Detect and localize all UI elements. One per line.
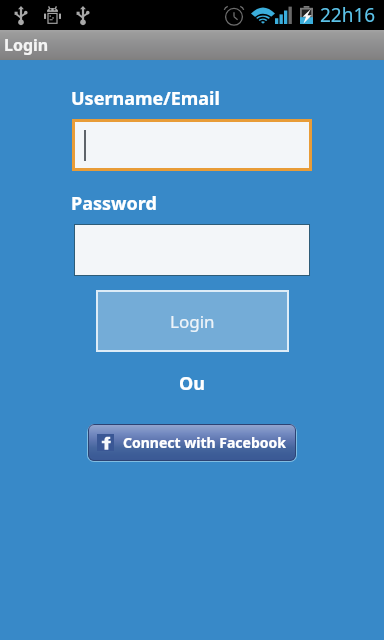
button[interactable]: Login [98,292,287,350]
staticText: Ou [0,371,384,396]
staticText: Username/Email [71,86,220,111]
staticText: Login [4,34,49,56]
staticText: 22h16 [320,2,376,28]
staticText: Login [170,310,215,333]
staticText: Password [71,191,157,216]
staticText: Connect with Facebook [123,433,286,452]
button[interactable] [75,122,309,168]
button[interactable]: Connect with Facebook [88,424,296,461]
